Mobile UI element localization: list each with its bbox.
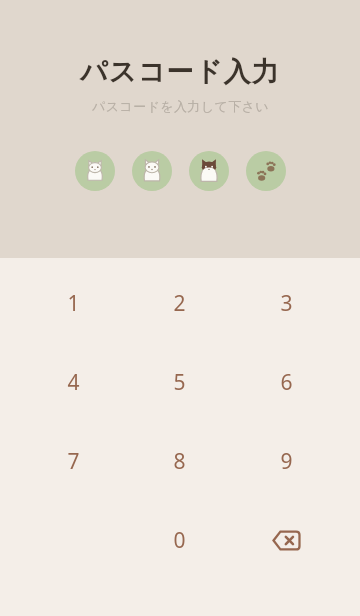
button[interactable]: Passcode digit 1 <box>75 151 115 191</box>
staticText: パスコード入力 <box>80 55 280 89</box>
button[interactable]: 9 <box>233 441 340 481</box>
button[interactable]: 8 <box>126 441 233 481</box>
button[interactable]: 4 <box>20 362 126 402</box>
staticText: 9 <box>280 447 293 476</box>
staticText: 8 <box>173 447 186 476</box>
button[interactable]: 7 <box>20 441 126 481</box>
staticText: 4 <box>67 368 80 397</box>
staticText: 0 <box>173 526 186 555</box>
button[interactable]: Backspace <box>233 520 340 560</box>
button[interactable]: 5 <box>126 362 233 402</box>
staticText: 7 <box>67 447 80 476</box>
staticText: 1 <box>67 289 80 318</box>
button[interactable]: 2 <box>126 283 233 323</box>
staticText: 3 <box>280 289 293 318</box>
button[interactable]: 0 <box>126 520 233 560</box>
staticText: 5 <box>173 368 186 397</box>
staticText: パスコードを入力して下さい <box>92 98 269 114</box>
staticText: 2 <box>173 289 186 318</box>
button[interactable]: 6 <box>233 362 340 402</box>
staticText: 6 <box>280 368 293 397</box>
button[interactable]: Passcode digit 2 <box>132 151 172 191</box>
button[interactable]: Passcode digit 3 <box>189 151 229 191</box>
button[interactable]: 1 <box>20 283 126 323</box>
button[interactable]: 3 <box>233 283 340 323</box>
button[interactable]: Passcode digit 4 <box>246 151 286 191</box>
